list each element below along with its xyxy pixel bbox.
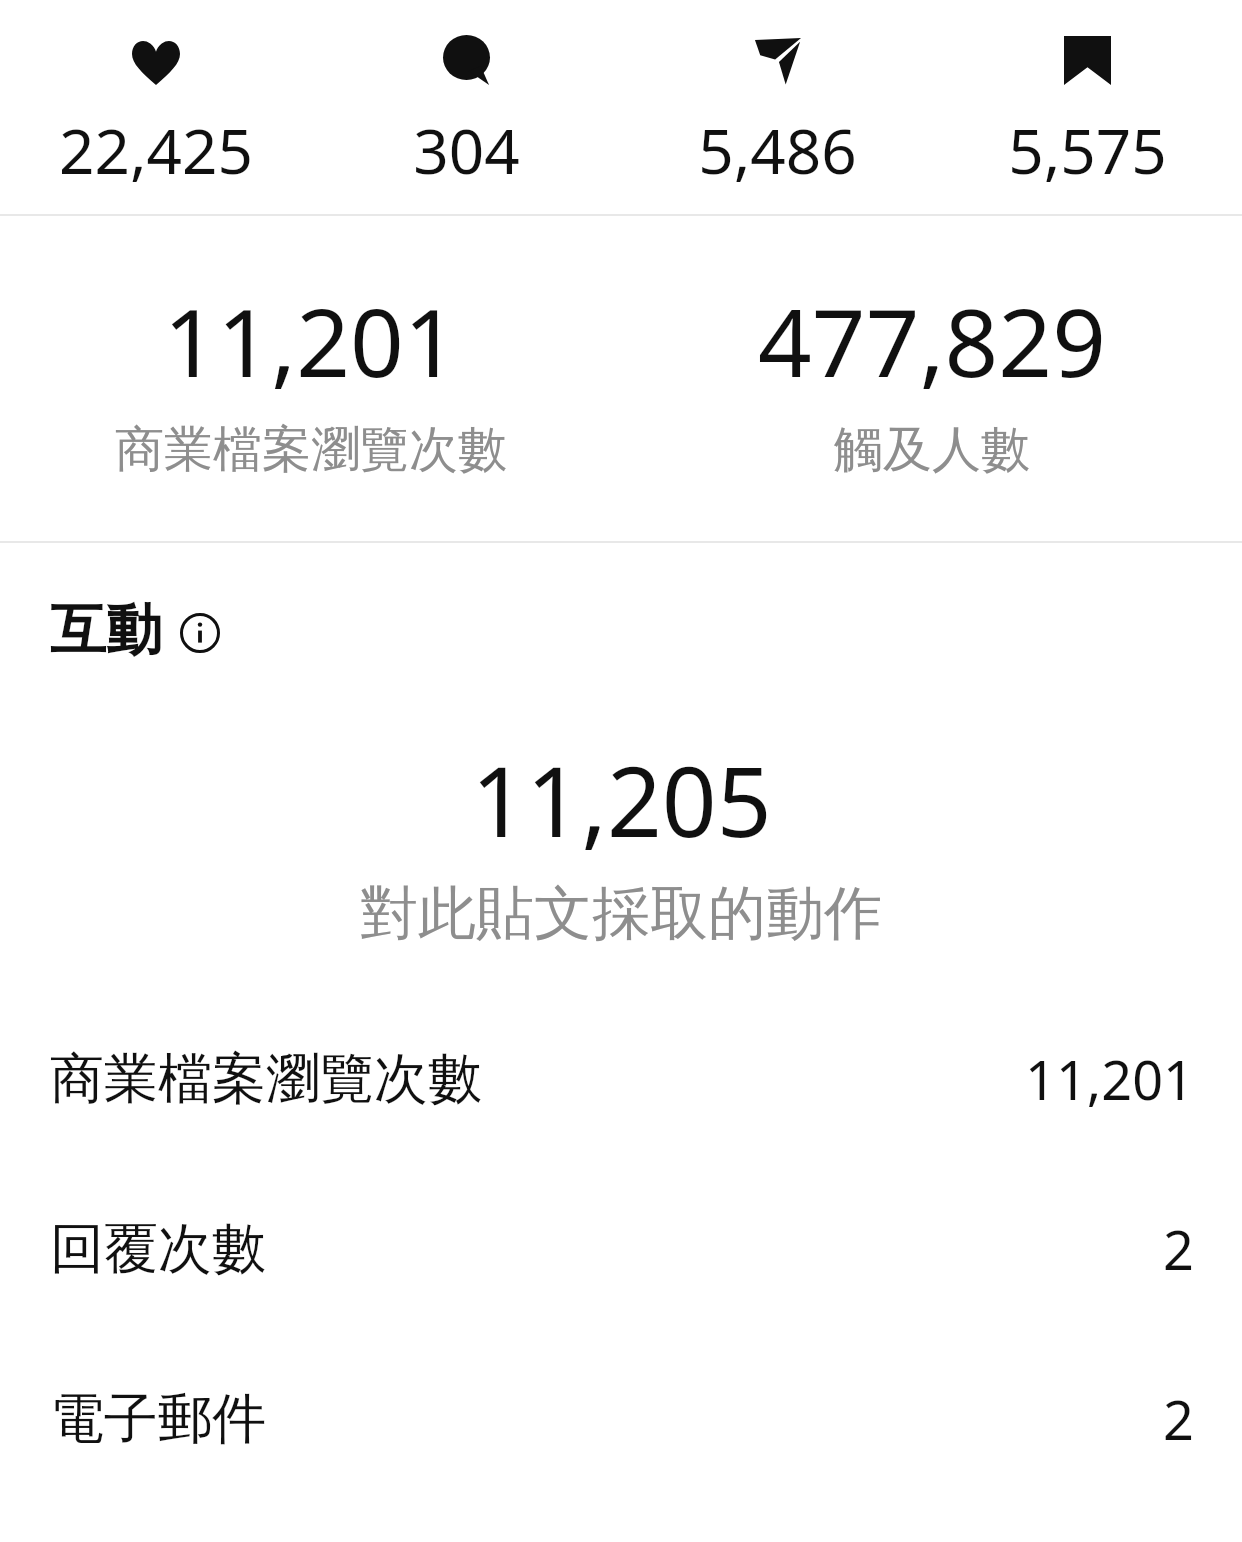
button[interactable]: Likes xyxy=(0,35,311,192)
staticText: 5,575 xyxy=(1008,108,1167,192)
staticText: 2 xyxy=(1163,1212,1194,1286)
button[interactable]: Shares xyxy=(622,35,933,192)
staticText: 對此貼文採取的動作 xyxy=(360,877,882,950)
staticText: 商業檔案瀏覽次數 xyxy=(50,1045,482,1113)
staticText: 11,201 xyxy=(163,277,458,405)
staticText: 商業檔案瀏覽次數 xyxy=(115,419,507,481)
button[interactable]: 11,201 xyxy=(0,277,621,481)
staticText: 304 xyxy=(413,108,520,192)
button[interactable]: 商業檔案瀏覽次數 xyxy=(0,994,1242,1164)
button[interactable]: 電子郵件 xyxy=(0,1334,1242,1504)
button[interactable]: 回覆次數 xyxy=(0,1164,1242,1334)
staticText: 5,486 xyxy=(698,108,857,192)
staticText: 觸及人數 xyxy=(834,419,1030,481)
staticText: 11,205 xyxy=(471,734,772,865)
button[interactable]: 477,829 xyxy=(621,277,1242,481)
staticText: 2 xyxy=(1163,1382,1194,1456)
button[interactable]: Comments xyxy=(311,35,622,192)
staticText: 回覆次數 xyxy=(50,1215,266,1283)
staticText: 22,425 xyxy=(59,108,253,192)
button[interactable]: 互動 說明 xyxy=(50,595,1242,666)
staticText: 互動 xyxy=(50,595,162,666)
staticText: 電子郵件 xyxy=(50,1385,266,1453)
staticText: 11,201 xyxy=(1025,1042,1194,1116)
staticText: 477,829 xyxy=(758,277,1106,405)
button[interactable]: Saves xyxy=(933,35,1242,192)
